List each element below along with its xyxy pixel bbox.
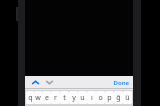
button[interactable]: y (69, 91, 78, 104)
staticText: ı (91, 93, 93, 103)
staticText: ü (125, 93, 130, 103)
staticText: e (45, 93, 49, 103)
button[interactable]: r (51, 91, 60, 104)
staticText: w (35, 93, 41, 103)
button[interactable]: p (105, 91, 114, 104)
staticText: ğ (116, 93, 121, 103)
button[interactable]: Previous field (30, 77, 41, 88)
staticText: t (63, 93, 66, 103)
staticText: p (107, 93, 112, 103)
staticText: Done (113, 79, 129, 87)
button[interactable]: e (42, 91, 51, 104)
button[interactable]: w (34, 91, 42, 104)
button[interactable]: ğ (114, 91, 123, 104)
button[interactable]: q (26, 91, 34, 104)
staticText: u (80, 93, 85, 103)
button[interactable]: ı (87, 91, 96, 104)
button[interactable]: u (78, 91, 87, 104)
button[interactable]: ü (123, 91, 132, 104)
button[interactable]: o (96, 91, 105, 104)
staticText: y (72, 93, 76, 103)
staticText: o (98, 93, 103, 103)
button[interactable]: Next field (44, 77, 55, 88)
button[interactable]: t (60, 91, 69, 104)
button[interactable]: Done (113, 77, 129, 88)
staticText: q (28, 93, 33, 103)
staticText: r (54, 93, 57, 103)
